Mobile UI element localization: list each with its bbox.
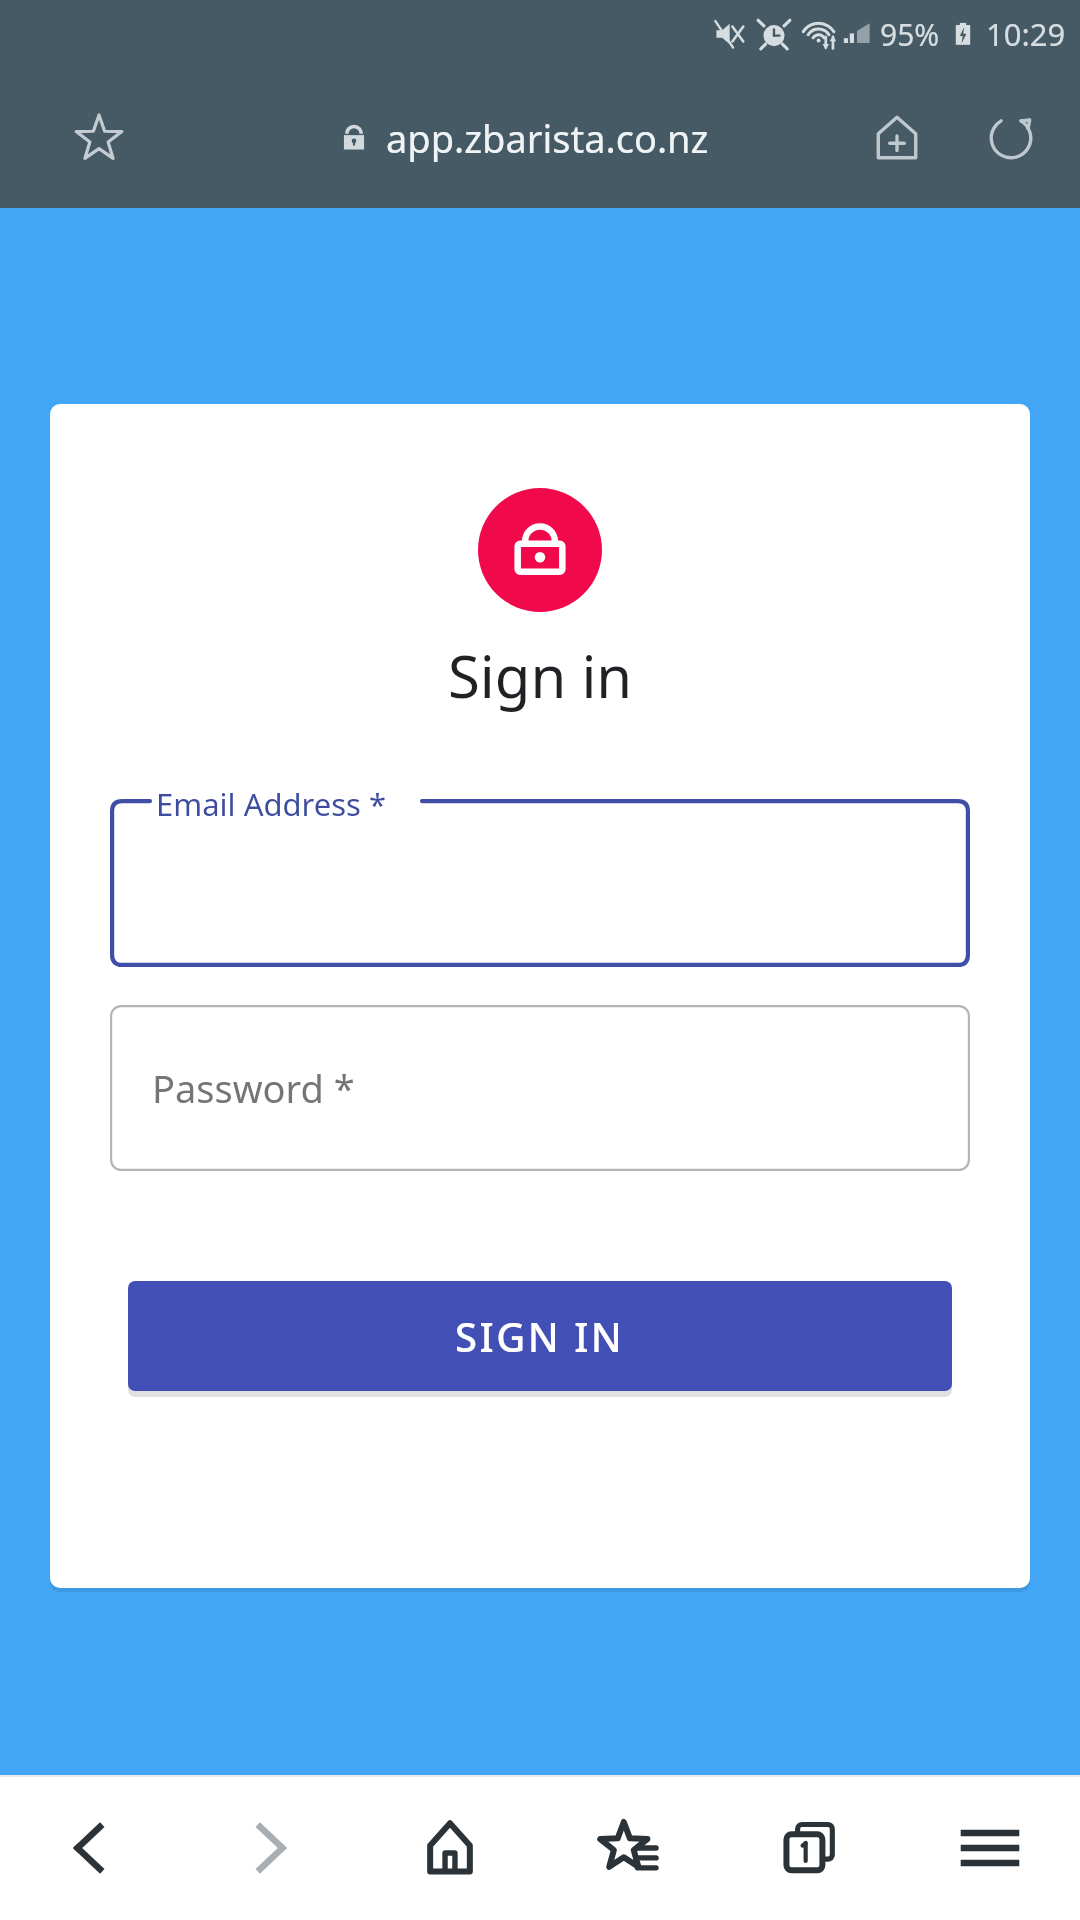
button[interactable]: New tab <box>864 105 930 171</box>
button[interactable]: Email Address * <box>110 771 970 967</box>
button[interactable]: Password * <box>110 1005 970 1171</box>
button[interactable]: Bookmark <box>68 107 130 169</box>
button[interactable]: app.zbarista.co.nz <box>336 112 709 164</box>
staticText: 95% <box>880 14 940 55</box>
button[interactable]: Back <box>34 1792 146 1904</box>
button[interactable]: Home <box>394 1792 506 1904</box>
staticText: SIGN IN <box>455 1309 625 1363</box>
button[interactable]: Tabs <box>754 1792 866 1904</box>
staticText: Password * <box>152 1062 355 1114</box>
staticText: Email Address * <box>156 783 387 825</box>
staticText: Sign in <box>448 636 633 715</box>
button[interactable]: Forward <box>214 1792 326 1904</box>
staticText: 10:29 <box>986 13 1066 55</box>
button[interactable]: SIGN IN <box>128 1281 952 1391</box>
button[interactable]: Menu <box>934 1792 1046 1904</box>
button[interactable]: Reload <box>978 105 1044 171</box>
button[interactable]: Bookmarks <box>574 1792 686 1904</box>
staticText: app.zbarista.co.nz <box>386 112 709 164</box>
